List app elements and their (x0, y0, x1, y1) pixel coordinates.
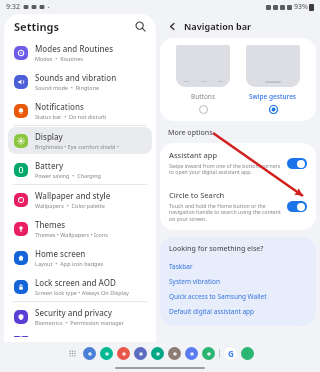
button[interactable]: Notifications (8, 97, 152, 124)
button[interactable]: Apps (67, 348, 78, 359)
staticText: Power saving • Charging (35, 172, 101, 179)
button[interactable]: Sounds and vibration (8, 68, 152, 95)
staticText: Default digital assistant app (169, 307, 255, 316)
staticText: Circle to Search (169, 190, 225, 200)
staticText: Quick access to Samsung Wallet (169, 292, 267, 301)
staticText: Sounds and vibration (35, 72, 117, 83)
button[interactable]: Display (8, 127, 152, 154)
staticText: Display (35, 131, 63, 142)
button[interactable]: App 4 (151, 347, 164, 360)
staticText: Themes • Wallpapers • Icons (35, 231, 108, 238)
button[interactable]: Wallpaper and style (8, 186, 152, 213)
button[interactable]: Circle to Search (160, 183, 316, 230)
staticText: System vibration (169, 277, 220, 286)
button[interactable]: App 1 (100, 347, 113, 360)
button[interactable]: Quick access to Samsung Wallet (169, 289, 307, 304)
staticText: Navigation bar (184, 20, 252, 32)
button[interactable]: Swipe gestures (246, 45, 300, 114)
button[interactable]: Search (132, 18, 148, 34)
staticText: Screen lock type • Always On Display (35, 289, 129, 296)
button[interactable]: Battery (8, 156, 152, 183)
button[interactable]: Default digital assistant app (169, 304, 307, 319)
staticText: Lock screen and AOD (35, 277, 116, 288)
button[interactable]: Download (241, 347, 254, 360)
button[interactable]: App 7 (202, 347, 215, 360)
staticText: Swipe inward from one of the bottom corn… (169, 162, 281, 176)
staticText: Status bar • Do not disturb (35, 113, 107, 120)
staticText: 9:32 (6, 2, 20, 12)
staticText: Modes • Routines (35, 55, 83, 62)
button[interactable]: Back (164, 18, 180, 34)
staticText: Taskbar (169, 262, 193, 271)
other: Circle to Search toggle (287, 201, 307, 212)
staticText: Wallpapers • Color palette (35, 202, 105, 209)
staticText: Battery (35, 160, 64, 171)
staticText: Swipe gestures (249, 92, 297, 101)
button[interactable]: Home screen (8, 244, 152, 271)
staticText: Themes (35, 219, 66, 230)
staticText: 93% (294, 2, 308, 12)
staticText: Sound mode • Ringtone (35, 84, 100, 91)
button[interactable]: App 6 (185, 347, 198, 360)
button[interactable]: Modes and Routines (8, 39, 152, 66)
staticText: Layout • App icon badges (35, 260, 104, 267)
button[interactable]: Themes (8, 215, 152, 242)
staticText: Biometrics • Permission manager (35, 319, 124, 326)
button[interactable]: App 3 (134, 347, 147, 360)
staticText: Buttons (191, 92, 215, 101)
staticText: Brightness • Eye comfort shield • Naviga… (35, 143, 146, 150)
staticText: Wallpaper and style (35, 190, 111, 201)
staticText: Security and privacy (35, 307, 112, 318)
button[interactable]: App 0 (83, 347, 96, 360)
button[interactable]: System vibration (169, 274, 307, 289)
button[interactable]: Taskbar (169, 259, 307, 274)
staticText: G (228, 348, 234, 359)
staticText: Home screen (35, 248, 86, 259)
staticText: Modes and Routines (35, 43, 114, 54)
staticText: Notifications (35, 101, 84, 112)
staticText: Looking for something else? (169, 244, 264, 254)
button[interactable]: Google (224, 347, 237, 360)
button[interactable]: Lock screen and AOD (8, 273, 152, 300)
staticText: Touch and hold the Home button or the na… (169, 202, 281, 223)
button[interactable]: Buttons (176, 45, 230, 114)
staticText: More options (168, 128, 213, 138)
button[interactable]: App 2 (117, 347, 130, 360)
button[interactable]: Location (8, 332, 152, 341)
staticText: Settings (14, 19, 60, 34)
other: Assistant app toggle (287, 158, 307, 169)
button[interactable]: Assistant app (160, 143, 316, 183)
staticText: Assistant app (169, 150, 218, 160)
button[interactable]: Security and privacy (8, 303, 152, 330)
button[interactable]: App 5 (168, 347, 181, 360)
